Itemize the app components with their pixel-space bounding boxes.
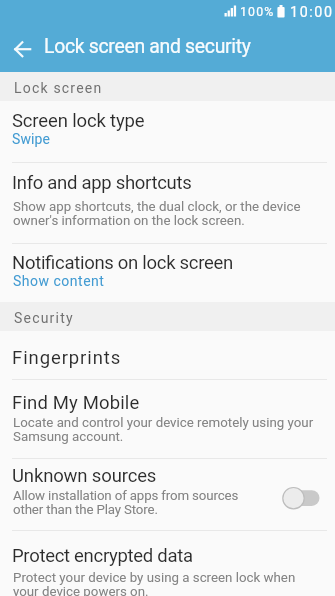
- button[interactable]: Unknown sources: [0, 459, 335, 531]
- staticText: Swipe: [12, 131, 51, 147]
- button[interactable]: Screen lock type: [0, 101, 335, 162]
- staticText: Fingerprints: [12, 347, 122, 369]
- staticText: Screen lock type: [12, 110, 145, 132]
- staticText: Unknown sources: [12, 465, 157, 487]
- button[interactable]: Protect encrypted data: [0, 531, 335, 596]
- staticText: Locate and control your device remotely …: [13, 415, 314, 444]
- button[interactable]: Fingerprints: [0, 331, 335, 379]
- staticText: 100%: [240, 5, 275, 19]
- staticText: Notifications on lock screen: [12, 252, 233, 274]
- button[interactable]: Info and app shortcuts: [0, 163, 335, 243]
- staticText: Security: [14, 310, 74, 326]
- button[interactable]: Find My Mobile: [0, 380, 335, 458]
- staticText: Info and app shortcuts: [12, 172, 192, 194]
- staticText: 10:00: [290, 4, 334, 21]
- staticText: Show content: [13, 273, 105, 289]
- staticText: Show app shortcuts, the dual clock, or t…: [13, 199, 301, 228]
- button[interactable]: Notifications on lock screen: [0, 244, 335, 302]
- staticText: Find My Mobile: [12, 392, 140, 414]
- staticText: Protect your device by using a screen lo…: [13, 570, 296, 596]
- staticText: Lock screen: [14, 80, 103, 96]
- staticText: Protect encrypted data: [12, 545, 193, 567]
- staticText: Lock screen and security: [44, 35, 251, 58]
- button[interactable]: [3, 30, 41, 68]
- staticText: Allow installation of apps from sources …: [13, 488, 239, 517]
